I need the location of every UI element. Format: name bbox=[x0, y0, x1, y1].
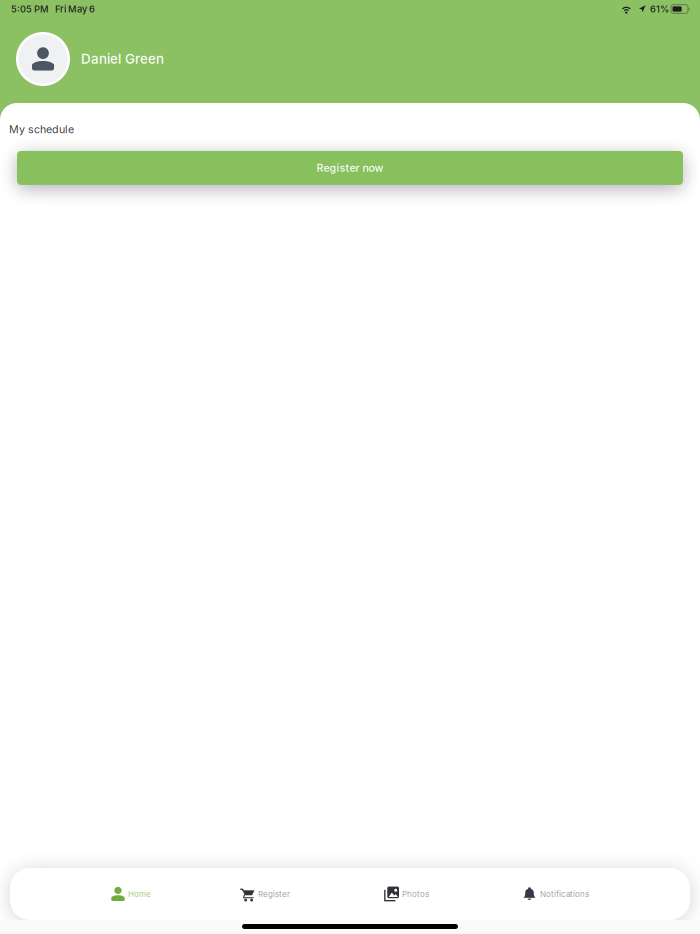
button[interactable]: Register now bbox=[17, 151, 683, 185]
staticText: Daniel Green bbox=[81, 51, 164, 67]
staticText: 61% bbox=[650, 3, 669, 15]
staticText: My schedule bbox=[9, 123, 74, 136]
staticText: Register now bbox=[316, 161, 383, 174]
button[interactable]: Register bbox=[238, 868, 292, 920]
button[interactable]: Photos bbox=[382, 868, 431, 920]
button[interactable]: Home bbox=[109, 868, 153, 920]
staticText: 5:05 PM bbox=[11, 3, 49, 15]
staticText: Register bbox=[258, 889, 290, 899]
staticText: Photos bbox=[402, 889, 429, 899]
staticText: Home bbox=[128, 889, 151, 899]
staticText: Notifications bbox=[540, 889, 589, 899]
staticText: Fri May 6 bbox=[49, 3, 95, 15]
button[interactable]: Notifications bbox=[520, 868, 591, 920]
